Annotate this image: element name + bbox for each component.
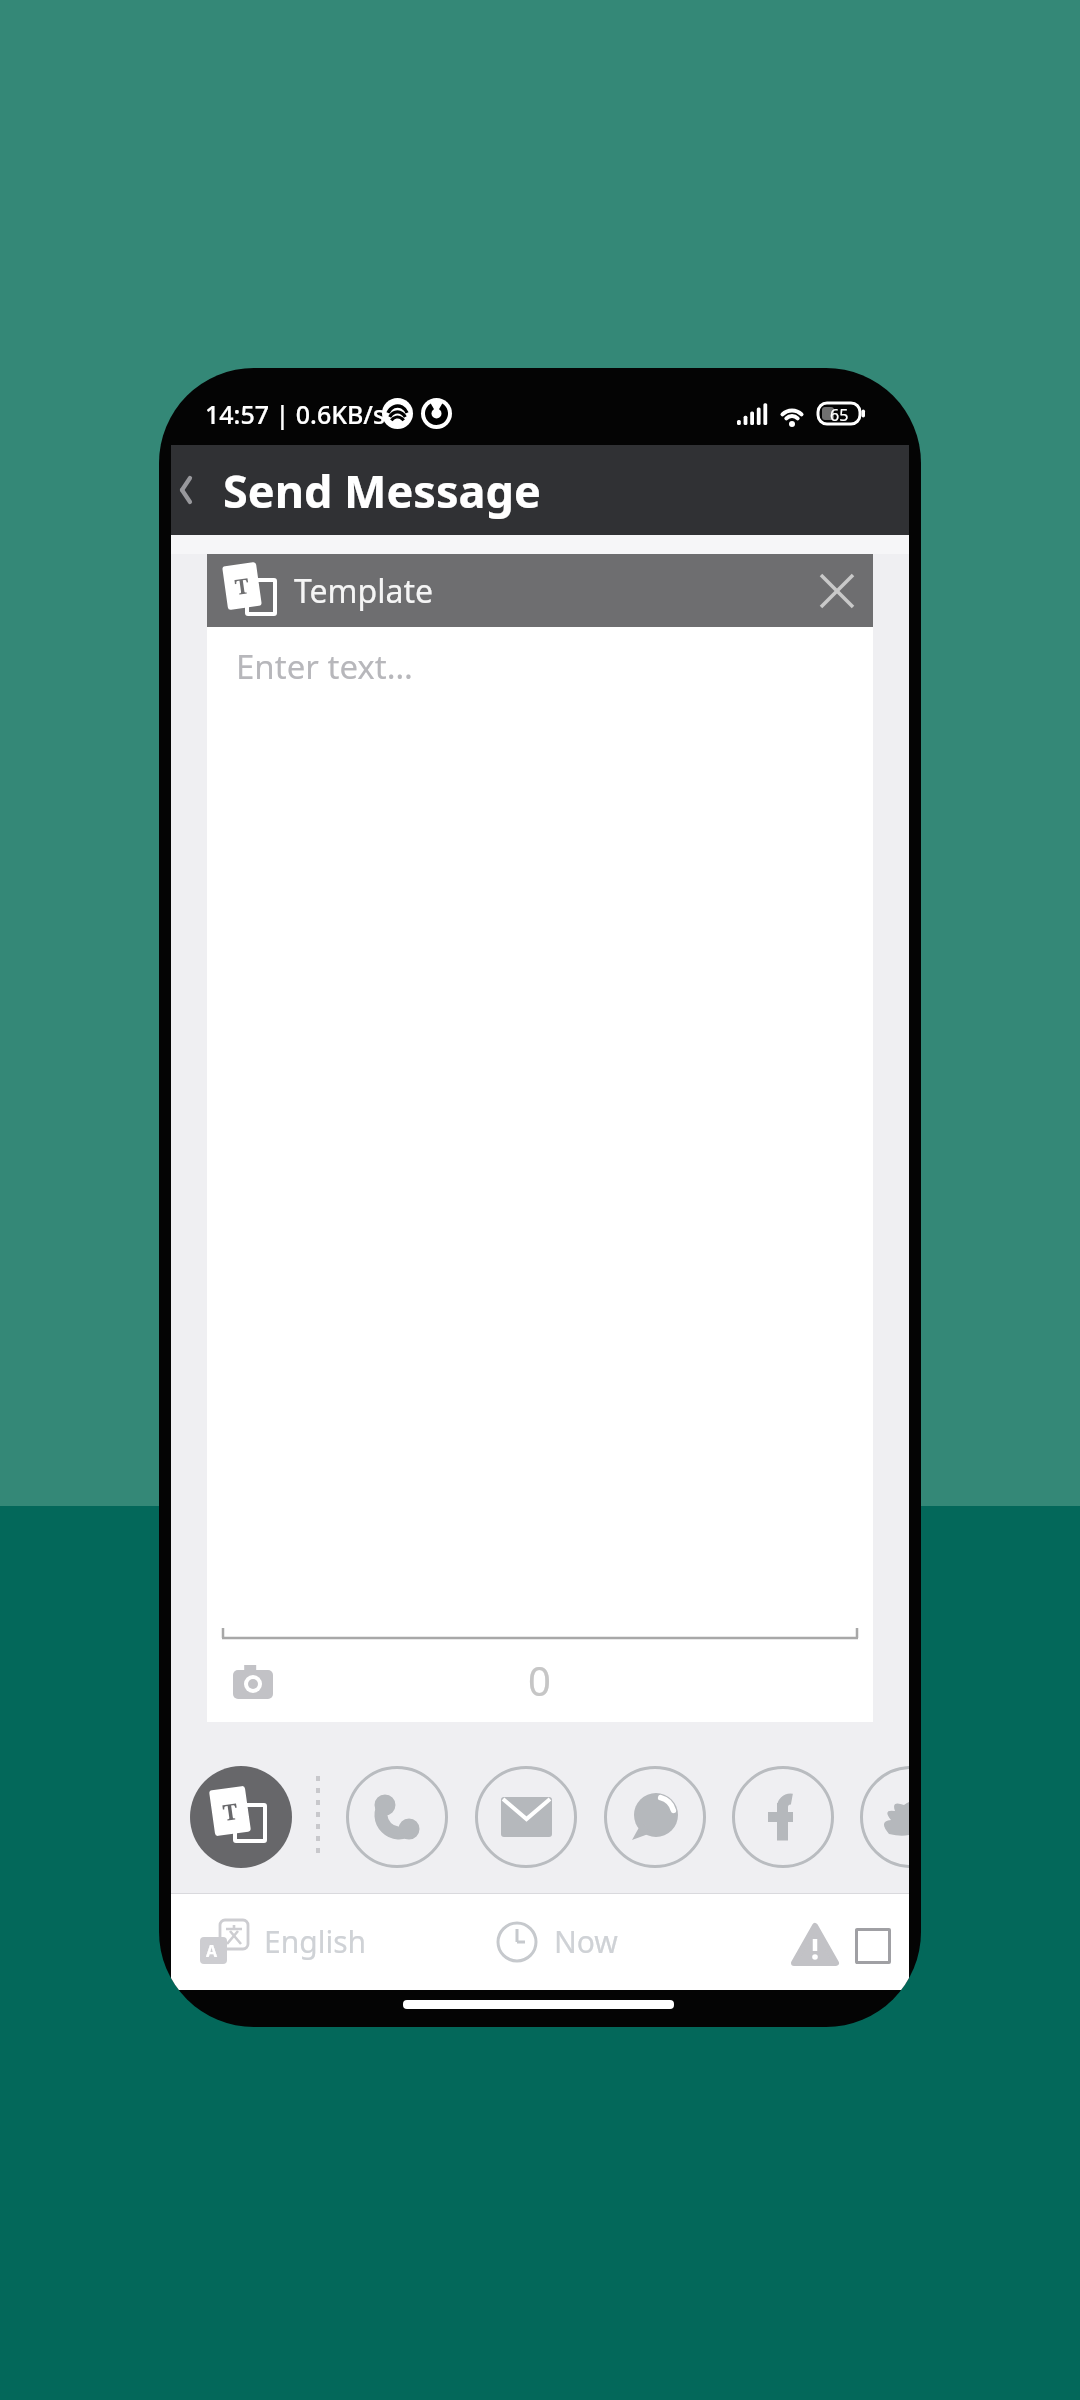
button[interactable] xyxy=(346,1766,448,1868)
button[interactable]: T xyxy=(207,554,873,627)
button[interactable] xyxy=(732,1766,834,1868)
button[interactable] xyxy=(604,1766,706,1868)
button[interactable] xyxy=(475,1766,577,1868)
button[interactable]: T xyxy=(190,1766,292,1868)
staticText: 0 xyxy=(528,1653,551,1707)
staticText: English xyxy=(264,1921,367,1962)
staticText: A xyxy=(206,1940,218,1962)
button[interactable]: Now xyxy=(496,1893,618,1990)
button[interactable] xyxy=(794,1926,836,1963)
button[interactable] xyxy=(860,1766,909,1868)
button[interactable] xyxy=(819,573,855,609)
button[interactable] xyxy=(179,476,193,504)
button[interactable] xyxy=(233,1665,273,1699)
staticText: T xyxy=(221,1795,240,1827)
button[interactable] xyxy=(855,1928,891,1964)
staticText: Now xyxy=(554,1921,618,1962)
staticText: 65 xyxy=(830,404,849,426)
staticText: Enter text… xyxy=(236,644,413,689)
staticText: T xyxy=(233,571,251,602)
button[interactable]: A xyxy=(200,1893,367,1990)
staticText: Send Message xyxy=(223,460,541,521)
staticText: 14:57 | 0.6KB/s xyxy=(205,397,386,431)
staticText: Template xyxy=(294,569,434,613)
